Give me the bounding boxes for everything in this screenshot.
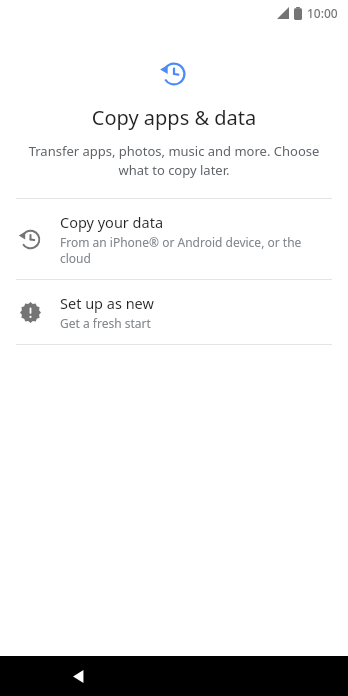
button[interactable]: Back [60, 658, 96, 694]
button[interactable]: Set up as new [0, 280, 348, 344]
staticText: Copy apps & data [0, 104, 348, 131]
button[interactable]: Copy your data [0, 199, 348, 279]
staticText: 10:00 [307, 5, 338, 21]
staticText: Transfer apps, photos, music and more. C… [22, 142, 326, 179]
staticText: From an iPhone® or Android device, or th… [60, 234, 332, 266]
staticText: Set up as new [60, 293, 154, 313]
staticText: Copy your data [60, 212, 164, 232]
staticText: Get a fresh start [60, 315, 151, 331]
